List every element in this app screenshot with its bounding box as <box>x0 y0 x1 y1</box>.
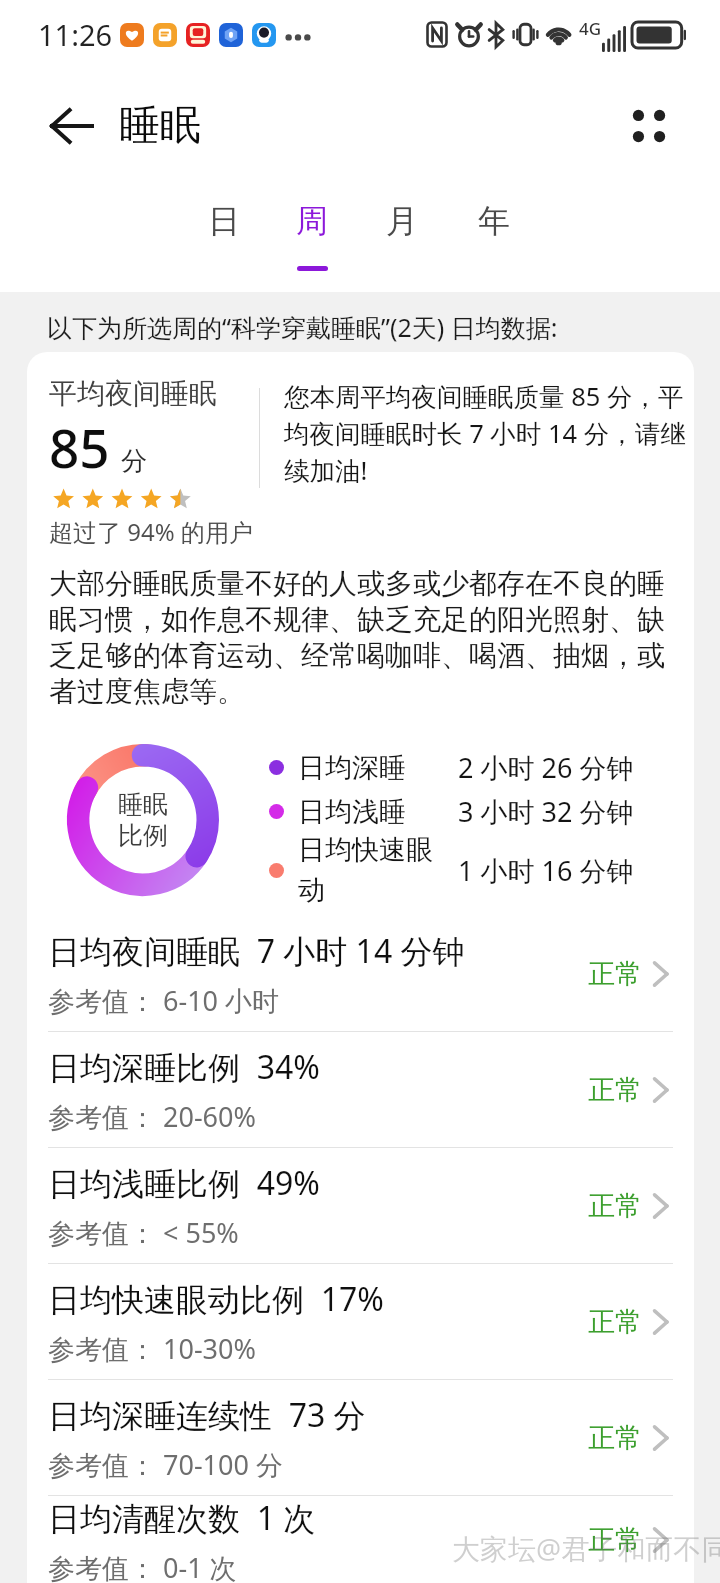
staticText: 比例 <box>118 820 168 851</box>
button[interactable]: 日均浅睡比例 49% <box>27 1148 694 1264</box>
button[interactable]: 日均深睡连续性 73 分 <box>27 1380 694 1496</box>
staticText: 参考值： 0-1 次 <box>48 1549 237 1583</box>
staticText: 85 <box>49 411 110 483</box>
staticText: 日均深睡 <box>298 751 406 785</box>
staticText: 正常 <box>588 1523 642 1557</box>
staticText: 大部分睡眠质量不好的人或多或少都存在不良的睡眠习惯，如作息不规律、缺乏充足的阳光… <box>49 566 672 709</box>
staticText: 正常 <box>588 1305 642 1339</box>
staticText: 正常 <box>588 1421 642 1455</box>
staticText: 您本周平均夜间睡眠质量 85 分，平均夜间睡眠时长 7 小时 14 分，请继续加… <box>284 379 690 488</box>
staticText: 3 小时 32 分钟 <box>458 793 634 830</box>
staticText: 日均浅睡比例 49% <box>48 1161 320 1205</box>
staticText: 日均快速眼动比例 17% <box>48 1277 384 1321</box>
staticText: 4G <box>579 17 602 40</box>
staticText: 正常 <box>588 957 642 991</box>
staticText: 参考值： 70-100 分 <box>48 1446 283 1483</box>
staticText: 日均深睡连续性 73 分 <box>48 1393 366 1437</box>
button[interactable]: 日均快速眼动比例 17% <box>27 1264 694 1380</box>
staticText: 平均夜间睡眠 <box>49 376 217 411</box>
staticText: 参考值： < 55% <box>48 1214 239 1251</box>
staticText: 周 <box>296 201 328 241</box>
button[interactable]: 日均清醒次数 1 次 <box>27 1496 694 1583</box>
staticText: 2 小时 26 分钟 <box>458 749 634 786</box>
button[interactable]: 月 <box>376 184 428 292</box>
staticText: 超过了 94% 的用户 <box>49 515 253 548</box>
staticText: 日均快速眼 动 <box>298 833 433 907</box>
staticText: 日均深睡比例 34% <box>48 1045 320 1089</box>
staticText: 参考值： 10-30% <box>48 1330 256 1367</box>
staticText: 睡眠 <box>119 100 201 152</box>
staticText: 参考值： 20-60% <box>48 1098 256 1135</box>
staticText: 日均清醒次数 1 次 <box>48 1496 316 1540</box>
button[interactable]: 年 <box>468 184 520 292</box>
staticText: 日均夜间睡眠 7 小时 14 分钟 <box>48 929 465 973</box>
button[interactable]: 日 <box>198 184 250 292</box>
staticText: 年 <box>478 201 510 241</box>
staticText: 分 <box>121 445 147 478</box>
staticText: 睡眠 <box>118 789 168 820</box>
button[interactable]: More options <box>617 94 681 158</box>
staticText: 以下为所选周的“科学穿戴睡眠”(2天) 日均数据: <box>47 310 558 344</box>
staticText: 月 <box>386 201 418 241</box>
staticText: 正常 <box>588 1073 642 1107</box>
button[interactable]: 周 <box>286 184 338 292</box>
button[interactable]: Back <box>42 96 102 156</box>
staticText: 正常 <box>588 1189 642 1223</box>
staticText: 11:26 <box>38 15 113 54</box>
button[interactable]: 日均深睡比例 34% <box>27 1032 694 1148</box>
staticText: 日 <box>208 201 240 241</box>
button[interactable]: 日均夜间睡眠 7 小时 14 分钟 <box>27 916 694 1032</box>
staticText: 日均浅睡 <box>298 795 406 829</box>
staticText: 1 小时 16 分钟 <box>458 852 634 889</box>
staticText: 大家坛@君子和而不同 <box>452 1529 720 1567</box>
staticText: 参考值： 6-10 小时 <box>48 982 280 1019</box>
